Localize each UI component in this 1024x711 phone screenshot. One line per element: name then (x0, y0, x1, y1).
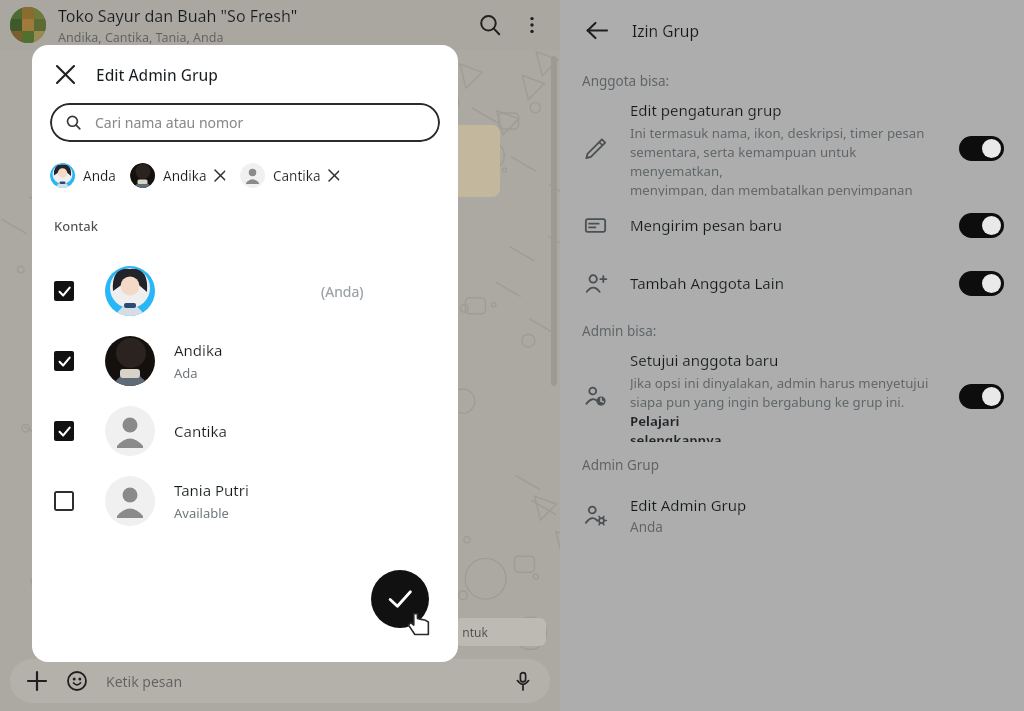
staticText: Andika (174, 340, 223, 360)
button[interactable]: Back (574, 8, 618, 52)
button[interactable]: Mengirim pesan baru (560, 196, 1024, 254)
staticText: Edit Admin Grup (630, 495, 747, 515)
button[interactable]: Tania Putri (32, 466, 458, 536)
button[interactable]: Voice message (510, 668, 536, 694)
button[interactable]: Attach (24, 668, 50, 694)
staticText: Anggota bisa: (582, 72, 670, 90)
staticText: Ada (174, 364, 198, 382)
staticText: Admin bisa: (582, 322, 657, 340)
button[interactable]: Toggle (959, 384, 1004, 409)
staticText: Toko Sayur dan Buah "So Fresh" (58, 5, 298, 27)
button[interactable]: More options (512, 5, 552, 45)
button[interactable]: Done (371, 570, 429, 628)
staticText: ntuk (456, 624, 488, 640)
staticText: Tania Putri (174, 480, 249, 500)
button[interactable]: Toggle (959, 271, 1004, 296)
button[interactable]: Setujui anggota baru (560, 350, 1024, 442)
button[interactable]: Toggle (959, 213, 1004, 238)
button[interactable]: Tambah Anggota Lain (560, 254, 1024, 312)
staticText: Ketik pesan (106, 672, 510, 691)
staticText: Anda (630, 518, 663, 536)
staticText: (Anda) (321, 282, 364, 301)
button[interactable]: Toggle (959, 136, 1004, 161)
staticText: Anda (83, 167, 116, 185)
button[interactable]: Anda (50, 163, 116, 188)
button[interactable]: Andika (32, 326, 458, 396)
button[interactable]: Cantika (32, 396, 458, 466)
staticText: Admin Grup (582, 456, 659, 474)
staticText: …t ini (312, 135, 346, 153)
staticText: Cari nama atau nomor (95, 113, 244, 132)
button[interactable]: Search (468, 3, 512, 47)
button[interactable]: Edit pengaturan grup (560, 100, 1024, 196)
button[interactable]: Edit Admin Grup (560, 484, 1024, 546)
button[interactable]: Emoji (64, 668, 90, 694)
staticText: Cantika (174, 421, 227, 441)
button[interactable]: (Anda) (32, 256, 458, 326)
button[interactable]: Cantika (240, 163, 340, 188)
staticText: Ini termasuk nama, ikon, deskripsi, time… (630, 124, 949, 196)
button[interactable]: Cari nama atau nomor (50, 103, 440, 142)
staticText: Kontak (54, 217, 98, 235)
staticText: Cantika (273, 167, 321, 185)
staticText: Andika, Cantika, Tania, Anda (58, 29, 224, 46)
staticText: Available (174, 504, 229, 522)
staticText: Setujui anggota baru (630, 350, 779, 370)
staticText: Izin Grup (632, 20, 699, 41)
staticText: Jika opsi ini dinyalakan, admin harus me… (630, 374, 949, 442)
staticText: Tambah Anggota Lain (630, 273, 784, 293)
staticText: …elajari (312, 159, 360, 177)
button[interactable]: Andika (130, 163, 226, 188)
staticText: Edit Admin Grup (96, 64, 218, 85)
staticText: Andika (163, 167, 207, 185)
staticText: Mengirim pesan baru (630, 215, 782, 235)
staticText: Edit pengaturan grup (630, 100, 782, 120)
button[interactable]: Close (44, 53, 86, 95)
